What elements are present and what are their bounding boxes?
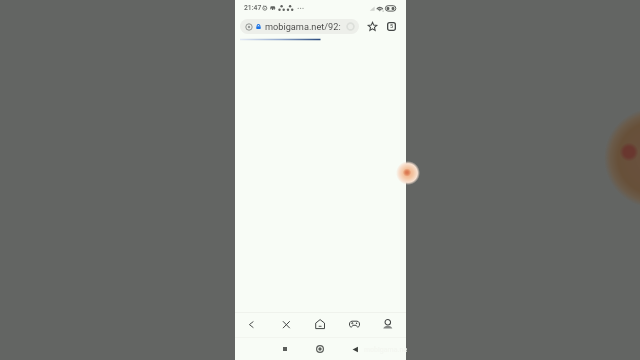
button[interactable]: Home	[312, 341, 328, 357]
staticText: 21:47	[244, 4, 262, 12]
button[interactable]: Back	[347, 341, 363, 357]
button[interactable]: Stop loading	[269, 312, 303, 336]
button[interactable]: Switch tabs	[385, 20, 398, 33]
button[interactable]: Games	[337, 312, 371, 336]
button[interactable]: Bookmark	[366, 20, 379, 33]
staticText: mobigama.net	[364, 346, 407, 354]
button[interactable]: mobigama.net/92:	[240, 19, 359, 34]
staticText: mobigama.net/92:	[265, 21, 341, 32]
button[interactable]: Home	[303, 312, 337, 336]
staticText: 5	[390, 23, 394, 30]
button[interactable]: Recent apps	[277, 341, 293, 357]
button[interactable]: Account	[371, 312, 405, 336]
button[interactable]: Back	[234, 312, 269, 336]
